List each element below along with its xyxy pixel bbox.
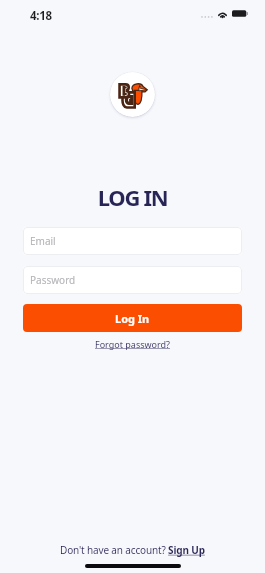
staticText: LOG IN — [23, 182, 242, 212]
staticText: Password — [30, 273, 76, 287]
button[interactable]: Forgot password? — [91, 336, 175, 352]
staticText: Don't have an account? Sign Up — [60, 543, 205, 557]
button[interactable]: Don't have an account? Sign Up — [52, 540, 213, 560]
staticText: Email — [30, 234, 56, 248]
staticText: 4:18 — [30, 8, 52, 24]
button[interactable]: Email — [23, 227, 242, 255]
staticText: Forgot password? — [95, 338, 171, 350]
button[interactable]: Log In — [23, 304, 242, 332]
staticText: Log In — [115, 311, 150, 326]
button[interactable]: Password — [23, 266, 242, 294]
other: Bowling Green State University logo — [110, 72, 155, 117]
